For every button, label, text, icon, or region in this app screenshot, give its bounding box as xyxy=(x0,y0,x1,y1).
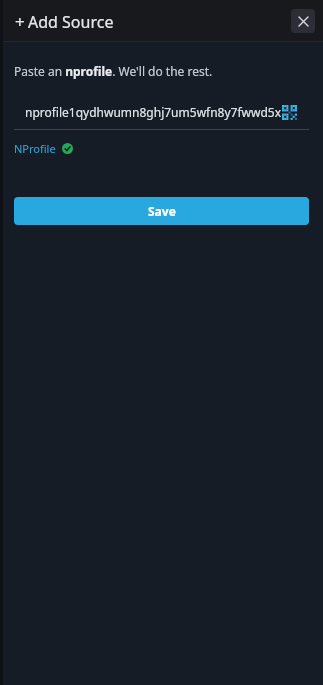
staticText: nprofile1qydhwumn8ghj7um5wfn8y7fwwd5x xyxy=(25,104,282,120)
staticText: + xyxy=(15,10,25,33)
button[interactable]: Scan QR code xyxy=(278,101,300,123)
staticText: Paste an nprofile. We'll do the rest. xyxy=(14,63,213,79)
staticText: Save xyxy=(148,203,176,219)
staticText: Add Source xyxy=(28,11,114,33)
staticText: NProfile xyxy=(14,141,56,156)
button[interactable]: Save xyxy=(14,197,309,225)
button[interactable]: Close xyxy=(291,9,315,33)
